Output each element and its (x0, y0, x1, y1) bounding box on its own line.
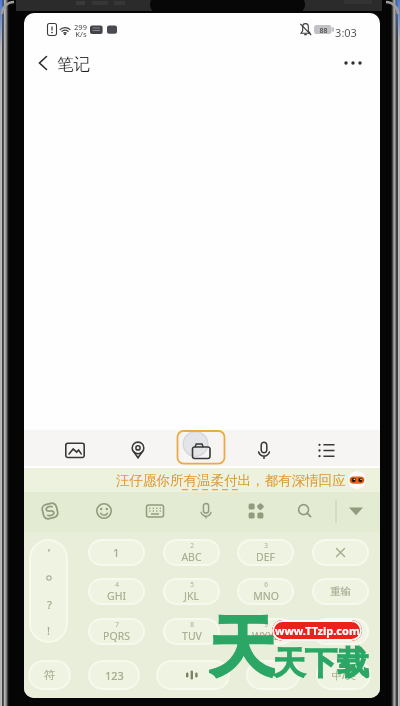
button[interactable] (241, 430, 287, 466)
button[interactable] (238, 492, 274, 532)
button[interactable]: 8 (163, 618, 220, 645)
button[interactable] (336, 49, 370, 77)
staticText: 3 (264, 541, 268, 550)
staticText: 4 (115, 580, 119, 589)
button[interactable] (304, 430, 350, 466)
button[interactable]: 9 (237, 618, 294, 645)
staticText: 天 (209, 606, 275, 686)
button[interactable]: 123 (88, 660, 140, 690)
button[interactable] (246, 660, 300, 690)
button[interactable]: 7 (88, 618, 145, 645)
staticText: 5 (190, 580, 194, 589)
staticText: 7 (115, 620, 119, 629)
staticText: 天下载 (273, 643, 369, 683)
button[interactable] (312, 618, 369, 645)
staticText: MNO (253, 589, 279, 603)
button[interactable] (287, 492, 323, 532)
button[interactable]: 4 (88, 578, 145, 605)
staticText: 符 (44, 668, 56, 682)
button[interactable]: www.TTzip.com (272, 620, 362, 641)
button[interactable] (188, 492, 224, 532)
staticText: 8 (190, 620, 194, 629)
button[interactable]: 6 (237, 578, 294, 605)
staticText: ? (47, 597, 52, 612)
button[interactable] (52, 430, 98, 466)
staticText: PQRS (103, 629, 130, 643)
button[interactable] (115, 430, 161, 466)
staticText: 3:03 (335, 25, 357, 40)
button[interactable]: 5 (163, 578, 220, 605)
staticText: ! (47, 623, 51, 638)
button[interactable] (156, 660, 230, 690)
staticText: 88 (319, 26, 328, 36)
staticText: K/s (75, 29, 87, 39)
staticText: 中/英 (332, 668, 356, 682)
staticText: TUV (182, 629, 202, 643)
staticText: www.TTzip.com (275, 623, 360, 638)
button[interactable] (312, 539, 369, 566)
staticText: ’ (48, 545, 51, 560)
staticText: 笔记 (57, 54, 90, 75)
staticText: 123 (105, 668, 124, 683)
staticText: 299 (74, 22, 87, 32)
button[interactable]: ’ (29, 539, 68, 643)
button[interactable] (86, 492, 122, 532)
button[interactable] (178, 430, 224, 466)
staticText: 1 (113, 545, 120, 560)
button[interactable]: 1 (88, 539, 145, 566)
staticText: 6 (264, 580, 268, 589)
staticText: 9 (264, 620, 268, 629)
button[interactable]: 中/英 (316, 660, 371, 690)
button[interactable]: 重输 (312, 578, 369, 605)
staticText: 汪仔愿你所有温柔付出，都有深情回应 (116, 472, 346, 489)
staticText: DEF (256, 550, 275, 564)
staticText: 2 (190, 541, 194, 550)
button[interactable]: 3 (237, 539, 294, 566)
button[interactable] (32, 492, 68, 532)
button[interactable] (137, 492, 173, 532)
staticText: WXYZ (252, 629, 280, 643)
staticText: JKL (184, 589, 199, 603)
staticText: ABC (181, 550, 202, 564)
staticText: 重输 (330, 585, 351, 598)
button[interactable]: 符 (28, 660, 71, 690)
button[interactable] (338, 492, 374, 532)
button[interactable] (24, 468, 380, 492)
button[interactable] (32, 52, 58, 78)
button[interactable]: 2 (163, 539, 220, 566)
staticText: GHI (107, 589, 126, 603)
